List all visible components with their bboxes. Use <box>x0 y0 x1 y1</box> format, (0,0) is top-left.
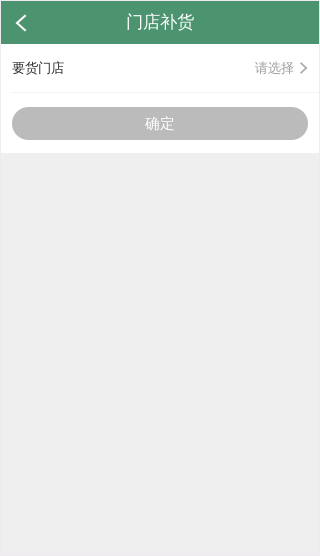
staticText: 门店补货 <box>126 11 194 33</box>
button[interactable]: Back <box>0 0 41 44</box>
button[interactable]: 要货门店 <box>0 44 320 92</box>
button[interactable]: 确定 <box>12 107 308 140</box>
staticText: 要货门店 <box>12 60 64 76</box>
staticText: 确定 <box>145 114 175 132</box>
staticText: 请选择 <box>255 60 294 76</box>
